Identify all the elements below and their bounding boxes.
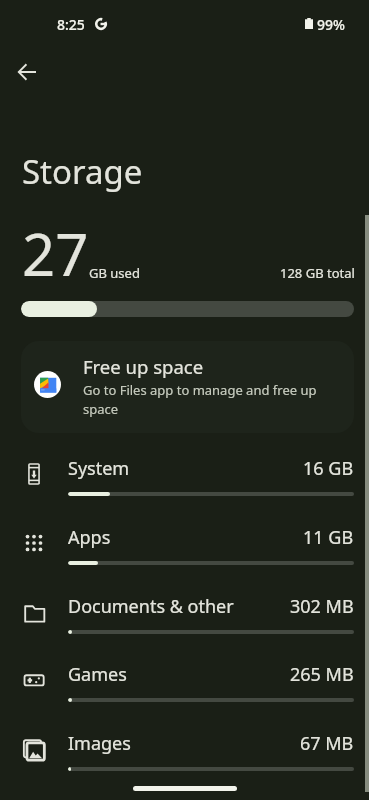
staticText: 99% <box>317 15 345 34</box>
staticText: Apps <box>68 525 111 550</box>
staticText: Games <box>68 662 127 687</box>
staticText: 8:25 <box>57 15 85 34</box>
staticText: 265 MB <box>290 662 354 687</box>
staticText: Free up space <box>83 354 204 379</box>
staticText: System <box>68 456 130 481</box>
button[interactable]: Images <box>0 722 369 784</box>
staticText: 27 <box>22 214 89 293</box>
staticText: 11 GB <box>303 525 354 550</box>
staticText: Images <box>68 731 131 756</box>
staticText: 128 GB total <box>280 264 355 282</box>
staticText: Go to Files app to manage and free up sp… <box>83 381 327 418</box>
button[interactable]: Apps <box>0 516 369 578</box>
button[interactable]: Free up space <box>21 341 354 433</box>
staticText: 16 GB <box>303 456 354 481</box>
staticText: Documents & other <box>68 594 234 619</box>
staticText: Storage <box>22 149 143 194</box>
staticText: 302 MB <box>290 594 354 619</box>
button[interactable]: Back <box>5 50 49 94</box>
button[interactable]: Games <box>0 653 369 715</box>
staticText: GB used <box>89 264 140 282</box>
button[interactable]: Documents & other <box>0 585 369 647</box>
staticText: 67 MB <box>300 731 354 756</box>
button[interactable]: System <box>0 447 369 509</box>
